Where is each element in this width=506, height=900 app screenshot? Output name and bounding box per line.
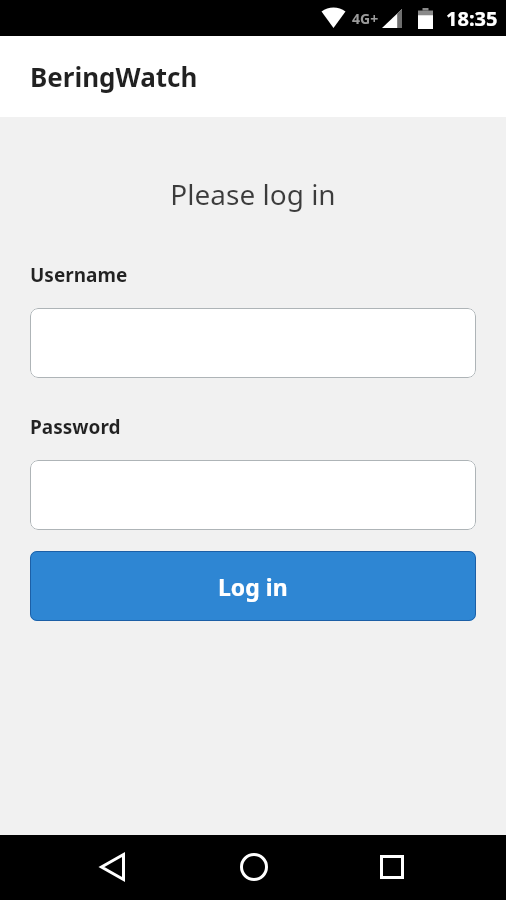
button[interactable] — [372, 847, 412, 887]
staticText: 18:35 — [446, 5, 498, 32]
button[interactable] — [234, 847, 274, 887]
staticText: Please log in — [0, 175, 506, 213]
staticText: Password — [30, 414, 121, 440]
button[interactable] — [30, 460, 476, 530]
button[interactable] — [30, 308, 476, 378]
staticText: BeringWatch — [30, 59, 198, 94]
button[interactable] — [92, 847, 132, 887]
staticText: 4G+ — [352, 9, 379, 28]
staticText: Username — [30, 262, 128, 288]
staticText: Log in — [218, 571, 288, 602]
button[interactable]: Log in — [30, 551, 476, 621]
